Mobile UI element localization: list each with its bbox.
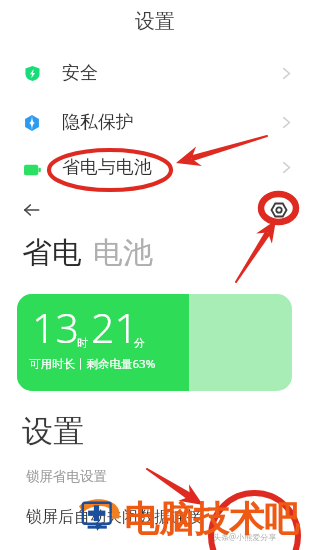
button[interactable]: 省电 [22,234,82,272]
staticText: 设置 [22,412,84,451]
staticText: 安全 [62,62,98,85]
staticText: 时 [77,336,88,350]
button[interactable]: 省电与电池 [0,147,309,188]
staticText: 锁屏省电设置 [26,468,107,485]
button[interactable]: Back [18,197,44,223]
staticText: 电脑技术吧 [124,497,299,541]
button[interactable]: 隐私保护 [0,98,309,147]
button[interactable]: 13 [17,294,292,391]
staticText: 省电 [22,234,82,272]
staticText: 省电与电池 [62,156,152,179]
staticText: 锁屏后自动关闭数据连接 [26,507,202,527]
button[interactable]: 安全 [0,49,309,98]
staticText: 21 [91,299,138,355]
staticText: 隐私保护 [62,111,134,134]
button[interactable]: 电池 [93,234,153,272]
staticText: 分 [134,336,145,350]
button[interactable]: Settings [267,198,291,222]
staticText: 13 [32,299,79,355]
staticText: 设置 [135,9,175,34]
staticText: 电池 [93,234,153,272]
staticText: 可用时长丨剩余电量63% [29,356,156,372]
staticText: 头条@小熊爱分享 [213,531,277,542]
